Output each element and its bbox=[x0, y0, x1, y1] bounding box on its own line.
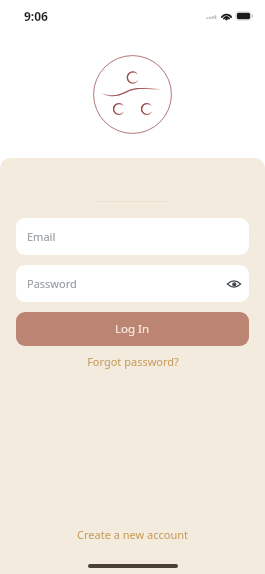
button[interactable]: Log In bbox=[16, 312, 249, 346]
button[interactable]: Create a new account bbox=[0, 527, 265, 542]
staticText: Forgot password? bbox=[87, 354, 179, 369]
button[interactable]: Show password bbox=[223, 273, 245, 295]
button[interactable]: Email bbox=[16, 218, 249, 255]
staticText: Email bbox=[27, 229, 56, 244]
staticText: Create a new account bbox=[77, 527, 188, 542]
staticText: 9:06 bbox=[24, 8, 48, 24]
button[interactable]: Forgot password? bbox=[0, 354, 265, 369]
staticText: Password bbox=[27, 276, 77, 291]
button[interactable]: Password bbox=[16, 265, 249, 302]
staticText: Log In bbox=[115, 321, 150, 337]
